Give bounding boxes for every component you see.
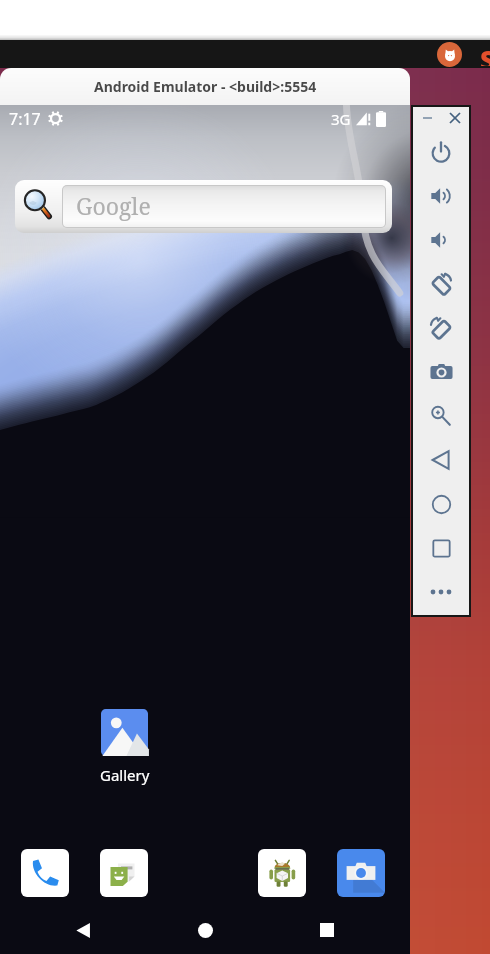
staticText: Android Emulator - <build>:5554 (94, 77, 317, 96)
button[interactable]: Back (413, 438, 469, 482)
button[interactable]: Google search (15, 180, 392, 233)
button[interactable]: Back (65, 912, 101, 948)
button[interactable]: Minimize (413, 107, 441, 129)
button[interactable]: Apps (258, 849, 306, 897)
button[interactable]: Close (441, 107, 469, 129)
button[interactable]: Rotate left (413, 262, 469, 306)
button[interactable]: Messages (100, 849, 148, 897)
button[interactable]: Home (187, 912, 223, 948)
button[interactable]: Home (413, 482, 469, 526)
button[interactable]: Overview (413, 526, 469, 570)
staticText: 7:17 (9, 108, 41, 130)
staticText: Gallery (100, 765, 150, 785)
button[interactable]: Volume up (413, 174, 469, 218)
button[interactable]: Rotate right (413, 306, 469, 350)
button[interactable]: Gallery (95, 709, 154, 785)
button[interactable]: Power (413, 130, 469, 174)
button[interactable]: More options (413, 570, 469, 614)
button[interactable]: Volume down (413, 218, 469, 262)
button[interactable]: Camera (337, 849, 385, 897)
button[interactable]: Recents (309, 912, 345, 948)
staticText: S (480, 42, 490, 66)
button[interactable]: Screenshot (413, 350, 469, 394)
button[interactable]: Zoom (413, 394, 469, 438)
button[interactable]: Sublime Text (476, 42, 490, 66)
button[interactable]: App launcher (437, 42, 462, 67)
button[interactable]: Phone (21, 849, 69, 897)
staticText: Google (76, 190, 151, 221)
staticText: 3G (331, 109, 351, 129)
